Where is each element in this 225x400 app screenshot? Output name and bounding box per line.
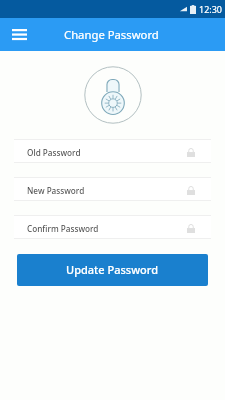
button[interactable]: Old Password bbox=[14, 139, 211, 163]
staticText: New Password bbox=[27, 185, 85, 196]
button[interactable]: Update Password bbox=[17, 254, 208, 286]
button[interactable]: Confirm Password bbox=[14, 215, 211, 239]
button[interactable]: New Password bbox=[14, 177, 211, 201]
button[interactable]: Open navigation menu bbox=[8, 24, 30, 46]
staticText: Confirm Password bbox=[27, 223, 99, 234]
staticText: Change Password bbox=[64, 27, 159, 42]
staticText: Update Password bbox=[66, 262, 158, 277]
staticText: 12:30 bbox=[199, 3, 223, 15]
staticText: Old Password bbox=[27, 147, 81, 158]
